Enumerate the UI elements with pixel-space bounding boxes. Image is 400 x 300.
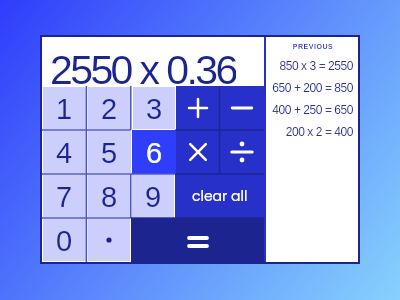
staticText: 850 x 3 = 2550 bbox=[266, 59, 353, 72]
button[interactable]: 3 bbox=[132, 86, 176, 130]
button[interactable]: 1 bbox=[42, 86, 87, 130]
button[interactable]: 0 bbox=[42, 218, 87, 262]
staticText: 3 bbox=[146, 93, 163, 125]
staticText: 400 + 250 = 650 bbox=[266, 103, 353, 116]
button[interactable]: Plus bbox=[176, 86, 220, 130]
staticText: PREVIOUS bbox=[268, 43, 358, 51]
staticText: 5 bbox=[101, 137, 118, 169]
button[interactable]: clear all bbox=[175, 174, 264, 218]
staticText: 1 bbox=[56, 93, 73, 125]
button[interactable]: 8 bbox=[87, 174, 131, 218]
button[interactable]: 6 bbox=[132, 130, 176, 174]
staticText: 7 bbox=[56, 181, 73, 213]
button[interactable]: 9 bbox=[131, 174, 175, 218]
staticText: 2550 x 0.36 bbox=[50, 47, 236, 86]
staticText: 0 bbox=[56, 225, 73, 257]
button[interactable]: Decimal point bbox=[87, 218, 131, 262]
staticText: 650 + 200 = 850 bbox=[266, 81, 353, 94]
button[interactable]: Minus bbox=[220, 86, 264, 130]
button[interactable]: Divide bbox=[220, 130, 264, 174]
staticText: clear all bbox=[192, 186, 248, 206]
button[interactable]: 2 bbox=[87, 86, 132, 130]
staticText: 2 bbox=[101, 93, 118, 125]
staticText: 9 bbox=[145, 181, 162, 213]
staticText: 8 bbox=[101, 181, 118, 213]
button[interactable]: 7 bbox=[42, 174, 87, 218]
button[interactable]: 4 bbox=[42, 130, 87, 174]
button[interactable]: Multiply bbox=[176, 130, 220, 174]
button[interactable]: 5 bbox=[87, 130, 132, 174]
staticText: 200 x 2 = 400 bbox=[266, 125, 353, 138]
button[interactable]: Equals bbox=[131, 218, 264, 262]
staticText: 4 bbox=[56, 137, 73, 169]
staticText: 6 bbox=[146, 137, 163, 169]
